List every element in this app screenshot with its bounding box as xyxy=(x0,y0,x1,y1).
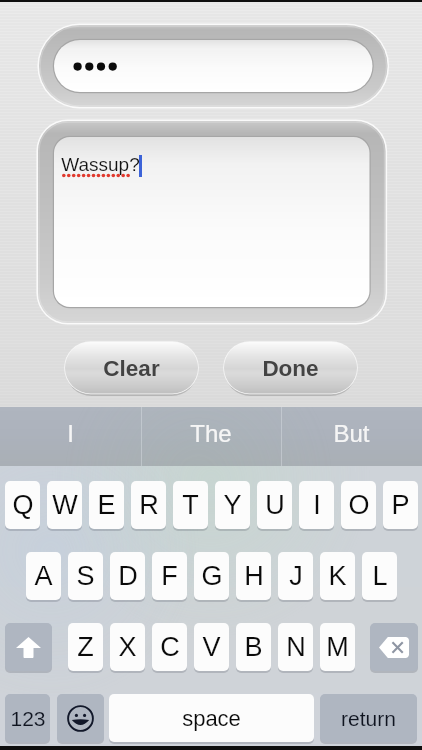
button[interactable]: F xyxy=(152,552,187,600)
button[interactable]: Shift xyxy=(5,623,52,671)
button[interactable]: M xyxy=(320,623,355,671)
button[interactable]: Done xyxy=(222,340,359,397)
staticText: U xyxy=(265,490,285,520)
button[interactable]: Q xyxy=(5,481,40,529)
staticText: W xyxy=(52,490,78,520)
staticText: Clear xyxy=(103,356,160,381)
staticText: J xyxy=(289,561,303,591)
button[interactable]: I xyxy=(299,481,334,529)
button[interactable]: A xyxy=(26,552,61,600)
button[interactable]: I xyxy=(0,407,140,466)
staticText: 123 xyxy=(10,707,46,730)
staticText: C xyxy=(160,632,180,662)
staticText: T xyxy=(182,490,199,520)
button[interactable]: C xyxy=(152,623,187,671)
button[interactable]: Z xyxy=(68,623,103,671)
staticText: M xyxy=(326,632,349,662)
staticText: R xyxy=(139,490,159,520)
button[interactable]: The xyxy=(140,407,281,466)
button[interactable]: V xyxy=(194,623,229,671)
button[interactable]: K xyxy=(320,552,355,600)
staticText: A xyxy=(34,561,53,591)
staticText: return xyxy=(341,707,396,730)
button[interactable]: L xyxy=(362,552,397,600)
button[interactable]: Clear xyxy=(63,340,200,397)
button[interactable]: H xyxy=(236,552,271,600)
button[interactable]: T xyxy=(173,481,208,529)
button[interactable]: G xyxy=(194,552,229,600)
button[interactable]: X xyxy=(110,623,145,671)
staticText: Wassup? xyxy=(61,154,140,175)
button[interactable]: J xyxy=(278,552,313,600)
staticText: V xyxy=(202,632,221,662)
staticText: X xyxy=(118,632,137,662)
staticText: P xyxy=(391,490,410,520)
button[interactable]: 123 xyxy=(5,694,50,742)
button[interactable]: E xyxy=(89,481,124,529)
staticText: space xyxy=(182,706,241,731)
button[interactable]: B xyxy=(236,623,271,671)
button[interactable]: N xyxy=(278,623,313,671)
staticText: G xyxy=(201,561,223,591)
button[interactable]: D xyxy=(110,552,145,600)
button[interactable]: R xyxy=(131,481,166,529)
staticText: But xyxy=(333,420,370,447)
staticText: I xyxy=(67,420,74,447)
staticText: N xyxy=(286,632,306,662)
button[interactable]: S xyxy=(68,552,103,600)
staticText: Z xyxy=(77,632,94,662)
staticText: Done xyxy=(262,356,319,381)
staticText: I xyxy=(313,490,321,520)
staticText: The xyxy=(190,420,232,447)
staticText: Y xyxy=(223,490,242,520)
button[interactable]: W xyxy=(47,481,82,529)
staticText: L xyxy=(372,561,388,591)
staticText: D xyxy=(118,561,138,591)
staticText: H xyxy=(244,561,264,591)
button[interactable]: U xyxy=(257,481,292,529)
button[interactable]: But xyxy=(281,407,422,466)
button[interactable]: return xyxy=(320,694,417,742)
button[interactable]: Backspace xyxy=(370,623,418,671)
staticText: B xyxy=(244,632,263,662)
button[interactable]: space xyxy=(109,694,314,742)
staticText: Q xyxy=(12,490,34,520)
staticText: S xyxy=(76,561,95,591)
button[interactable]: O xyxy=(341,481,376,529)
button[interactable]: Y xyxy=(215,481,250,529)
button[interactable]: Emoji xyxy=(57,694,104,742)
button[interactable]: P xyxy=(383,481,418,529)
staticText: K xyxy=(328,561,347,591)
staticText: F xyxy=(161,561,178,591)
staticText: E xyxy=(97,490,116,520)
staticText: O xyxy=(348,490,370,520)
